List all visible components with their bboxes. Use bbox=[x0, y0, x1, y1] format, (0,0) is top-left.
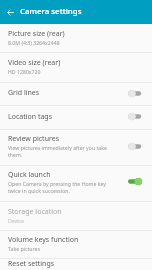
button[interactable]: Video size (rear) bbox=[0, 53, 152, 82]
button[interactable]: Location tags bbox=[0, 106, 152, 129]
button[interactable]: Grid lines bbox=[0, 83, 152, 105]
staticText: 8.0M (4:3) 3264x2448 bbox=[8, 39, 60, 46]
staticText: Device bbox=[8, 217, 24, 224]
staticText: Grid lines bbox=[8, 88, 40, 98]
staticText: Camera settings bbox=[20, 6, 82, 17]
button[interactable]: Volume keys function bbox=[0, 231, 152, 258]
button[interactable]: Quick launch bbox=[0, 166, 152, 201]
button[interactable]: Picture size (rear) bbox=[0, 24, 152, 52]
button[interactable]: Back bbox=[0, 0, 20, 24]
staticText: Volume keys function bbox=[8, 235, 79, 245]
staticText: View pictures immediately after you take… bbox=[8, 144, 117, 158]
staticText: Location tags bbox=[8, 112, 53, 122]
staticText: Take pictures bbox=[8, 245, 40, 252]
staticText: Review pictures bbox=[8, 134, 60, 144]
staticText: Picture size (rear) bbox=[8, 29, 65, 39]
staticText: Video size (rear) bbox=[8, 58, 61, 68]
button[interactable]: Reset settings bbox=[0, 259, 152, 270]
staticText: Open Camera by pressing the Home key twi… bbox=[8, 180, 117, 194]
staticText: Quick launch bbox=[8, 170, 51, 180]
button[interactable]: Review pictures bbox=[0, 130, 152, 165]
staticText: Reset settings bbox=[8, 259, 55, 269]
staticText: Storage location bbox=[8, 207, 62, 217]
button[interactable]: Storage location bbox=[0, 202, 152, 230]
staticText: HD 1280x720 bbox=[8, 68, 41, 75]
